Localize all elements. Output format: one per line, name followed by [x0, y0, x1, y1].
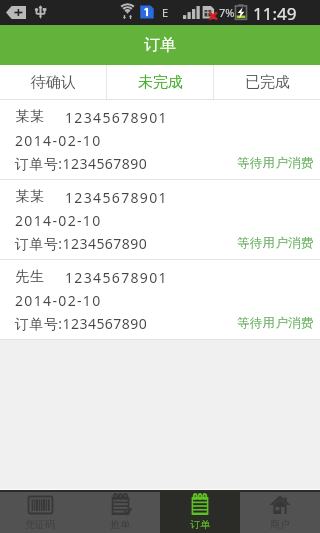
staticText: 订单号:1234567890 — [15, 314, 148, 333]
staticText: 已完成 — [245, 73, 290, 92]
button[interactable]: 某某 — [0, 180, 320, 260]
button[interactable]: 未完成 — [107, 65, 213, 100]
staticText: 订单号:1234567890 — [15, 154, 148, 173]
staticText: 先生 — [15, 268, 44, 286]
staticText: 2014-02-10 — [15, 211, 102, 230]
button[interactable]: 已完成 — [214, 65, 320, 100]
staticText: 11:49 — [253, 2, 297, 25]
staticText: 2014-02-10 — [15, 131, 102, 150]
staticText: 抢单 — [110, 518, 130, 531]
staticText: 等待用户消费 — [237, 315, 314, 331]
staticText: 商户 — [270, 518, 290, 531]
button[interactable]: 凭证码 — [0, 490, 80, 533]
staticText: 凭证码 — [25, 518, 55, 531]
staticText: 订单 — [144, 35, 176, 55]
staticText: 某某 — [15, 108, 44, 126]
staticText: 等待用户消费 — [237, 235, 314, 251]
staticText: 12345678901 — [65, 188, 168, 207]
button[interactable]: 订单 — [160, 490, 240, 533]
staticText: 未完成 — [138, 73, 183, 92]
staticText: 12345678901 — [65, 108, 168, 127]
staticText: 某某 — [15, 188, 44, 206]
button[interactable]: 抢单 — [80, 490, 160, 533]
staticText: 12345678901 — [65, 268, 168, 287]
staticText: E — [162, 5, 169, 20]
button[interactable]: 某某 — [0, 100, 320, 180]
staticText: 2014-02-10 — [15, 291, 102, 310]
staticText: 订单号:1234567890 — [15, 234, 148, 253]
button[interactable]: 待确认 — [0, 65, 106, 100]
staticText: 订单 — [190, 518, 210, 531]
button[interactable]: 商户 — [240, 490, 320, 533]
staticText: 待确认 — [31, 73, 76, 92]
button[interactable]: 先生 — [0, 260, 320, 340]
staticText: 7% — [219, 5, 235, 20]
staticText: 等待用户消费 — [237, 155, 314, 171]
